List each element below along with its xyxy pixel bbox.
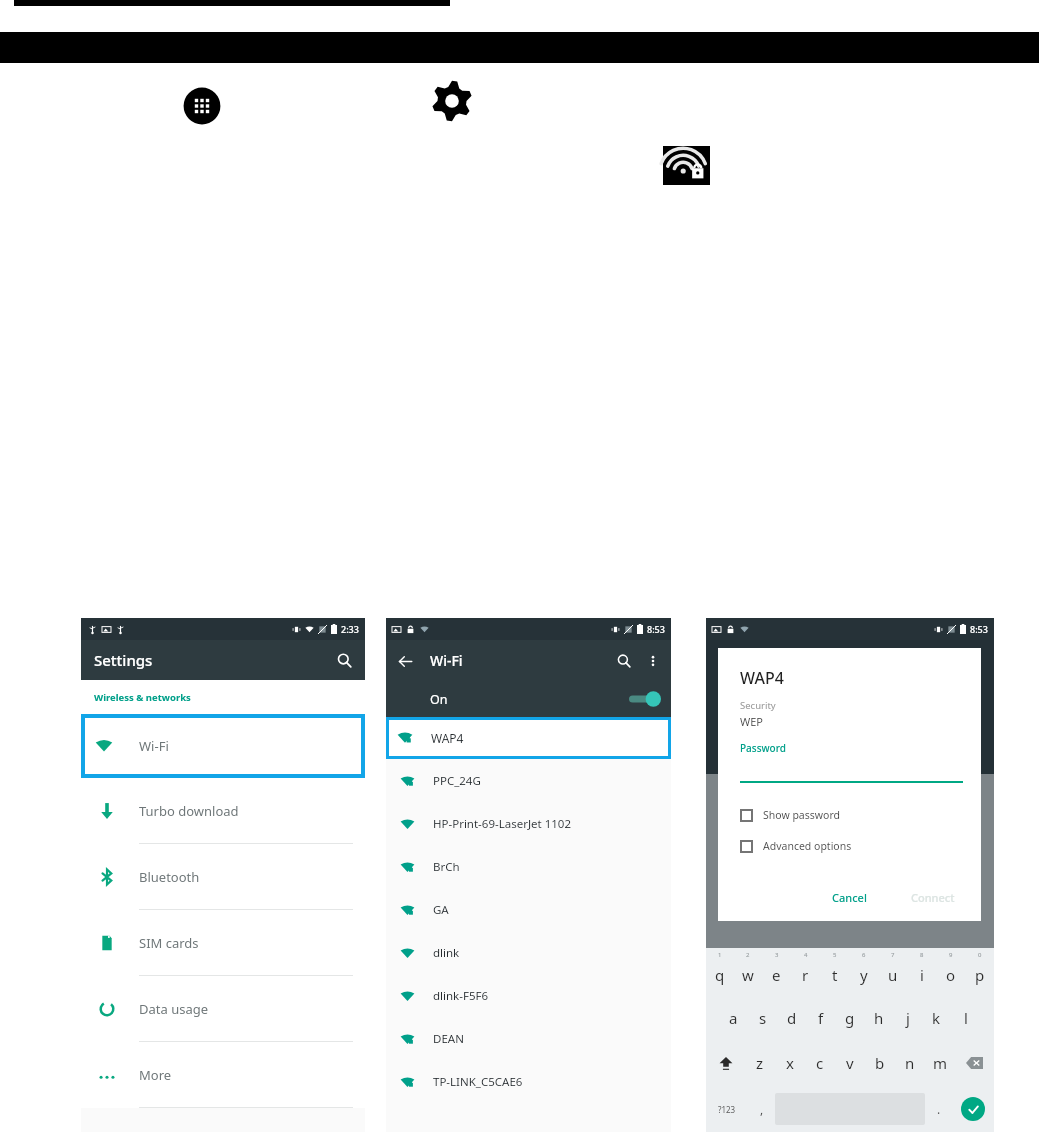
- staticText: q: [715, 965, 725, 985]
- staticText: 2: [746, 951, 750, 959]
- staticText: b: [875, 1053, 885, 1073]
- staticText: v: [846, 1053, 854, 1073]
- staticText: 1: [718, 951, 722, 959]
- button[interactable]: .: [925, 1086, 952, 1132]
- button[interactable]: a: [719, 995, 748, 1040]
- button[interactable]: c: [805, 1040, 835, 1086]
- button[interactable]: l: [951, 995, 980, 1040]
- staticText: Security: [740, 699, 776, 712]
- button[interactable]: 8: [907, 950, 936, 995]
- button[interactable]: Search: [613, 650, 635, 672]
- button[interactable]: WAP4: [386, 717, 671, 759]
- button[interactable]: f: [806, 995, 835, 1040]
- staticText: SIM cards: [139, 934, 199, 952]
- button[interactable]: 5: [820, 950, 849, 995]
- button[interactable]: Settings: [81, 640, 365, 680]
- button[interactable]: dlink: [386, 931, 671, 974]
- button[interactable]: Connect: [903, 886, 963, 909]
- button[interactable]: More options: [643, 651, 663, 671]
- staticText: Password: [740, 741, 786, 755]
- button[interactable]: GA: [386, 888, 671, 931]
- staticText: f: [818, 1008, 824, 1028]
- button[interactable]: 7: [878, 950, 907, 995]
- staticText: m: [933, 1053, 948, 1073]
- button[interactable]: Enter: [952, 1086, 994, 1132]
- staticText: 4: [804, 951, 808, 959]
- staticText: k: [932, 1008, 941, 1028]
- button[interactable]: m: [925, 1040, 955, 1086]
- button[interactable]: Shift: [706, 1040, 745, 1086]
- staticText: 5: [833, 951, 837, 959]
- button[interactable]: BrCh: [386, 845, 671, 888]
- button[interactable]: Show password: [740, 808, 840, 822]
- button[interactable]: DEAN: [386, 1017, 671, 1060]
- button[interactable]: 0: [965, 950, 994, 995]
- button[interactable]: Secure Wi-Fi network: [663, 146, 710, 185]
- button[interactable]: PPC_24G: [386, 759, 671, 802]
- staticText: Advanced options: [763, 839, 852, 853]
- button[interactable]: Search: [333, 649, 355, 671]
- button[interactable]: x: [775, 1040, 805, 1086]
- staticText: Wi-Fi: [430, 651, 463, 670]
- staticText: 7: [891, 951, 895, 959]
- button[interactable]: Cancel: [824, 886, 875, 909]
- button[interactable]: TP-LINK_C5CAE6: [386, 1060, 671, 1103]
- staticText: j: [906, 1008, 910, 1028]
- button[interactable]: SIM cards: [81, 910, 365, 976]
- button[interactable]: All apps: [182, 86, 222, 126]
- button[interactable]: Delete: [955, 1040, 994, 1086]
- staticText: WAP4: [431, 730, 464, 746]
- staticText: u: [888, 965, 898, 985]
- button[interactable]: h: [864, 995, 893, 1040]
- staticText: TP-LINK_C5CAE6: [433, 1074, 523, 1090]
- button[interactable]: v: [835, 1040, 865, 1086]
- staticText: Bluetooth: [139, 868, 200, 886]
- staticText: Turbo download: [139, 802, 239, 820]
- staticText: PPC_24G: [433, 773, 481, 789]
- button[interactable]: Back: [386, 640, 671, 681]
- button[interactable]: z: [745, 1040, 775, 1086]
- button[interactable]: 9: [936, 950, 965, 995]
- button[interactable]: Settings: [430, 79, 474, 123]
- button[interactable]: g: [835, 995, 864, 1040]
- staticText: WAP4: [740, 667, 784, 689]
- button[interactable]: dlink-F5F6: [386, 974, 671, 1017]
- staticText: Wireless & networks: [94, 691, 191, 704]
- staticText: a: [729, 1008, 738, 1028]
- button[interactable]: k: [922, 995, 951, 1040]
- button[interactable]: Advanced options: [740, 839, 852, 853]
- button[interactable]: Wi-Fi: [81, 714, 365, 778]
- staticText: r: [802, 965, 809, 985]
- staticText: HP-Print-69-LaserJet 1102: [433, 816, 571, 832]
- button[interactable]: j: [893, 995, 922, 1040]
- button[interactable]: 6: [849, 950, 878, 995]
- staticText: 8: [920, 951, 924, 959]
- staticText: x: [786, 1053, 794, 1073]
- button[interactable]: 1: [706, 950, 734, 995]
- button[interactable]: ,: [748, 1086, 775, 1132]
- button[interactable]: 3: [762, 950, 791, 995]
- staticText: p: [975, 965, 985, 985]
- button[interactable]: Back: [394, 650, 416, 672]
- button[interactable]: 2: [734, 950, 762, 995]
- button[interactable]: b: [865, 1040, 895, 1086]
- button[interactable]: Turbo download: [81, 778, 365, 844]
- button[interactable]: ?123: [706, 1086, 748, 1132]
- staticText: w: [742, 965, 754, 985]
- staticText: WEP: [740, 714, 764, 729]
- staticText: 8:53: [647, 623, 665, 635]
- button[interactable]: On: [386, 681, 671, 717]
- button[interactable]: Data usage: [81, 976, 365, 1042]
- staticText: o: [946, 965, 956, 985]
- button[interactable]: HP-Print-69-LaserJet 1102: [386, 802, 671, 845]
- button[interactable]: Bluetooth: [81, 844, 365, 910]
- staticText: y: [860, 965, 868, 985]
- button[interactable]: More: [81, 1042, 365, 1108]
- button[interactable]: d: [777, 995, 806, 1040]
- staticText: More: [139, 1066, 172, 1084]
- button[interactable]: 4: [791, 950, 820, 995]
- staticText: Wi-Fi: [139, 737, 169, 755]
- button[interactable]: s: [748, 995, 777, 1040]
- button[interactable]: n: [895, 1040, 925, 1086]
